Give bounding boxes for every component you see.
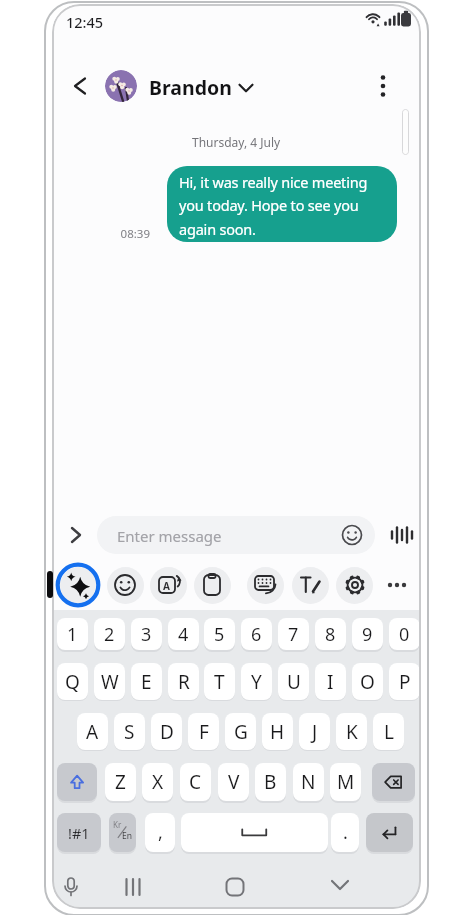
staticText: X <box>152 769 164 795</box>
button[interactable]: W <box>94 663 125 700</box>
button[interactable] <box>213 865 257 909</box>
button[interactable] <box>247 567 284 604</box>
staticText: E <box>141 669 152 695</box>
button[interactable]: Z <box>105 763 136 801</box>
button[interactable] <box>60 567 97 604</box>
button[interactable]: P <box>389 663 420 700</box>
button[interactable]: 3 <box>131 618 162 650</box>
staticText: Y <box>251 669 262 695</box>
staticText: D <box>160 719 174 745</box>
staticText: Thursday, 4 July <box>192 134 281 150</box>
button[interactable]: B <box>255 763 286 801</box>
button[interactable]: N <box>293 763 324 801</box>
button[interactable]: J <box>299 713 330 750</box>
staticText: R <box>178 669 190 695</box>
button[interactable]: I <box>315 663 346 700</box>
button[interactable] <box>190 563 234 607</box>
button[interactable] <box>194 567 231 604</box>
button[interactable] <box>111 865 155 909</box>
button[interactable]: 0 <box>389 618 420 650</box>
button[interactable]: Y <box>241 663 272 700</box>
button[interactable] <box>288 563 332 607</box>
button[interactable] <box>52 865 93 909</box>
staticText: F <box>199 719 209 745</box>
staticText: Enter message <box>117 526 222 546</box>
button[interactable] <box>181 813 328 852</box>
button[interactable] <box>243 563 287 607</box>
button[interactable] <box>57 763 97 801</box>
staticText: A <box>86 719 99 745</box>
button[interactable] <box>330 513 374 557</box>
button[interactable] <box>58 64 102 108</box>
button[interactable] <box>318 863 362 907</box>
button[interactable] <box>380 513 421 557</box>
staticText: O <box>360 669 375 695</box>
button[interactable]: E <box>131 663 162 700</box>
button[interactable] <box>375 563 419 607</box>
button[interactable]: C <box>180 763 211 801</box>
button[interactable] <box>97 516 375 554</box>
staticText: 9 <box>362 622 373 647</box>
button[interactable] <box>103 563 147 607</box>
button[interactable]: Q <box>57 663 88 700</box>
button[interactable]: 6 <box>241 618 272 650</box>
staticText: Brandon <box>149 74 232 101</box>
button[interactable]: !#1 <box>57 813 101 852</box>
staticText: !#1 <box>68 823 90 843</box>
button[interactable]: R <box>168 663 199 700</box>
staticText: En <box>122 830 132 842</box>
button[interactable] <box>292 567 329 604</box>
staticText: Kr <box>113 819 122 830</box>
button[interactable]: 2 <box>94 618 125 650</box>
button[interactable] <box>336 567 373 604</box>
staticText: L <box>384 719 394 745</box>
staticText: 0 <box>399 622 410 647</box>
button[interactable]: H <box>262 713 293 750</box>
button[interactable]: 4 <box>168 618 199 650</box>
staticText: 5 <box>214 622 225 647</box>
staticText: H <box>270 719 285 745</box>
button[interactable]: X <box>142 763 173 801</box>
button[interactable]: S <box>114 713 145 750</box>
button[interactable]: O <box>352 663 383 700</box>
staticText: Hi, it was really nice meeting you today… <box>179 172 368 240</box>
button[interactable]: D <box>151 713 182 750</box>
button[interactable]: L <box>373 713 404 750</box>
button[interactable] <box>366 813 413 852</box>
button[interactable] <box>224 66 268 110</box>
button[interactable]: 1 <box>57 618 88 650</box>
staticText: Q <box>65 669 80 695</box>
button[interactable] <box>54 513 98 557</box>
staticText: W <box>101 669 119 695</box>
button[interactable]: V <box>218 763 249 801</box>
button[interactable]: U <box>278 663 309 700</box>
button[interactable]: G <box>225 713 256 750</box>
button[interactable]: A <box>77 713 108 750</box>
button[interactable]: F <box>188 713 219 750</box>
staticText: 08:39 <box>120 226 150 240</box>
staticText: 4 <box>178 622 189 647</box>
button[interactable] <box>361 64 405 108</box>
button[interactable]: 7 <box>278 618 309 650</box>
button[interactable]: 9 <box>352 618 383 650</box>
button[interactable]: . <box>331 813 359 852</box>
staticText: . <box>343 820 348 845</box>
staticText: G <box>234 719 248 745</box>
button[interactable] <box>147 563 191 607</box>
staticText: T <box>214 669 225 695</box>
button[interactable] <box>333 563 377 607</box>
staticText: B <box>264 769 277 795</box>
button[interactable]: M <box>330 763 361 801</box>
button[interactable]: T <box>204 663 235 700</box>
button[interactable] <box>109 813 136 852</box>
button[interactable]: K <box>336 713 367 750</box>
button[interactable] <box>105 70 137 102</box>
staticText: U <box>287 669 301 695</box>
button[interactable]: 8 <box>315 618 346 650</box>
button[interactable] <box>107 567 144 604</box>
button[interactable] <box>150 567 187 604</box>
button[interactable] <box>372 763 415 801</box>
button[interactable]: 5 <box>204 618 235 650</box>
button[interactable]: , <box>145 813 175 852</box>
staticText: Z <box>115 769 126 795</box>
